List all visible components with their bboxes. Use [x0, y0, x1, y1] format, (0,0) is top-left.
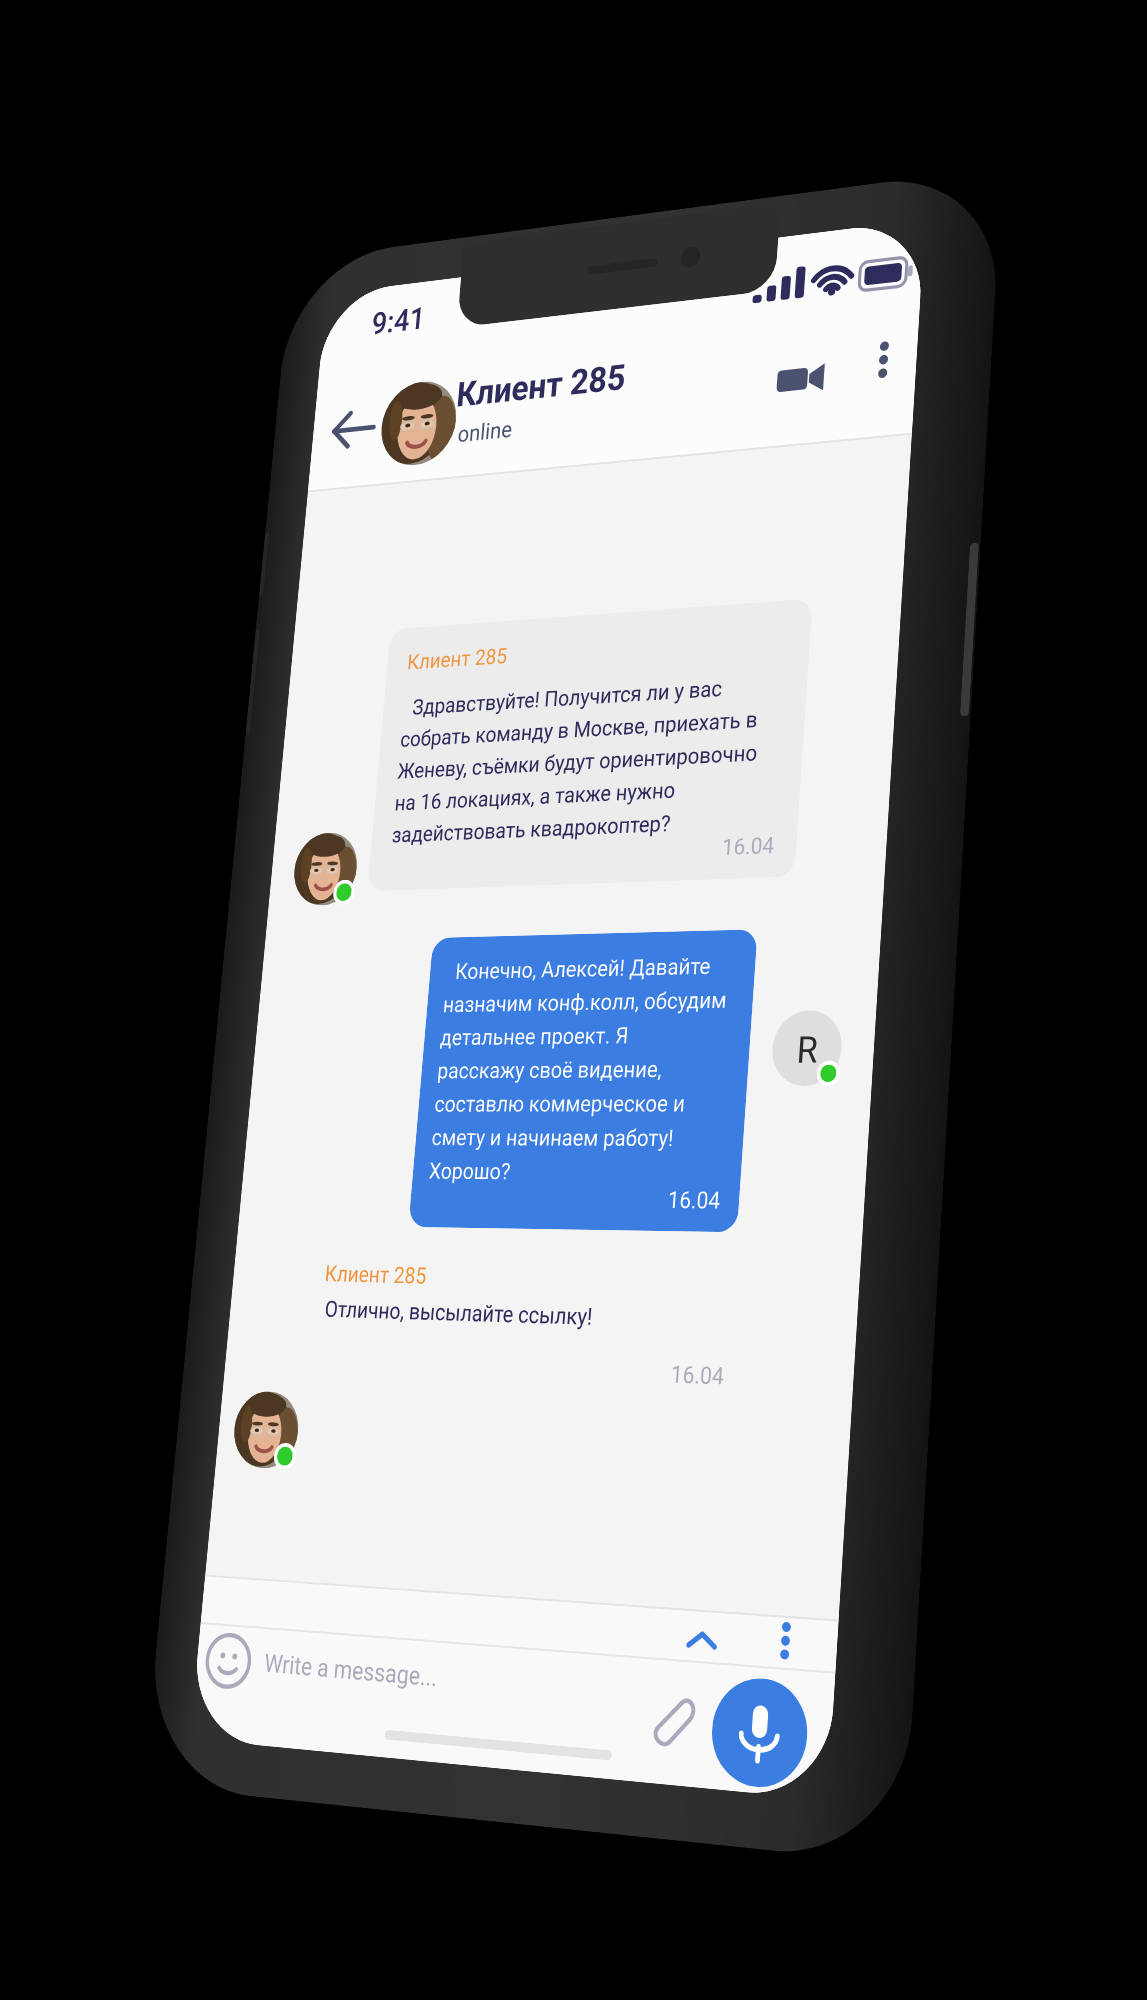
- staticText: Клиент 285: [324, 1261, 428, 1289]
- button[interactable]: Video call: [773, 350, 828, 409]
- staticText: Здравствуйте! Получится ли у вас собрать…: [391, 673, 763, 848]
- staticText: 16.04: [721, 832, 776, 861]
- staticText: Write a message...: [263, 1648, 439, 1692]
- staticText: 9:41: [370, 300, 427, 341]
- staticText: 16.04: [670, 1361, 726, 1390]
- button[interactable]: Клиент 285: [367, 598, 813, 891]
- staticText: Клиент 285: [406, 643, 508, 675]
- button[interactable]: Back: [325, 398, 381, 460]
- button[interactable]: Expand: [677, 1612, 727, 1669]
- staticText: Отлично, высылайте ссылку!: [324, 1296, 593, 1330]
- button[interactable]: Attach file: [643, 1690, 696, 1752]
- button[interactable]: Emoji: [201, 1628, 256, 1694]
- staticText: Клиент 285: [455, 356, 628, 414]
- button[interactable]: Menu: [764, 1617, 807, 1665]
- staticText: 16.04: [667, 1186, 723, 1214]
- staticText: R: [796, 1028, 820, 1070]
- staticText: Конечно, Алексей! Давайте назначим конф.…: [428, 953, 730, 1187]
- staticText: online: [457, 416, 513, 447]
- button[interactable]: Конечно, Алексей! Давайте назначим конф.…: [408, 929, 758, 1232]
- button[interactable]: More options: [863, 338, 904, 381]
- button[interactable]: Voice message: [708, 1675, 811, 1791]
